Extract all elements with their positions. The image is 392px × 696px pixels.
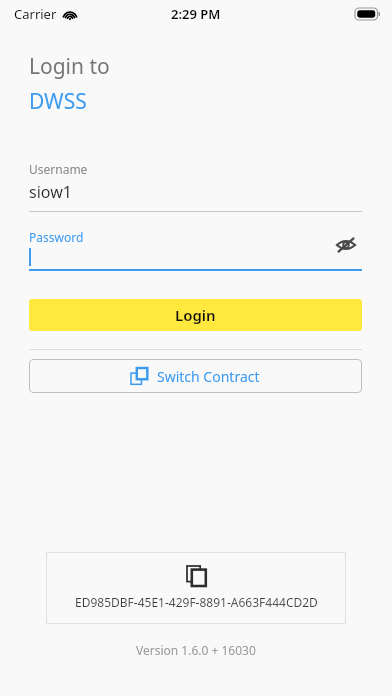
button[interactable]: Show password [330,229,362,261]
staticText: Login to [29,52,110,81]
button[interactable]: Switch Contract [29,359,362,393]
staticText: Password [29,229,84,245]
button[interactable]: Copy device id [46,552,346,624]
staticText: siow1 [29,181,72,203]
staticText: DWSS [29,87,87,116]
staticText: Login [175,305,216,325]
staticText: Carrier [14,5,57,23]
button[interactable]: Login [29,299,362,331]
staticText: Version 1.6.0 + 16030 [136,642,256,658]
staticText: Username [29,161,88,177]
staticText: 2:29 PM [171,5,221,23]
staticText: ED985DBF-45E1-429F-8891-A663F444CD2D [75,594,318,610]
staticText: Switch Contract [157,367,260,386]
